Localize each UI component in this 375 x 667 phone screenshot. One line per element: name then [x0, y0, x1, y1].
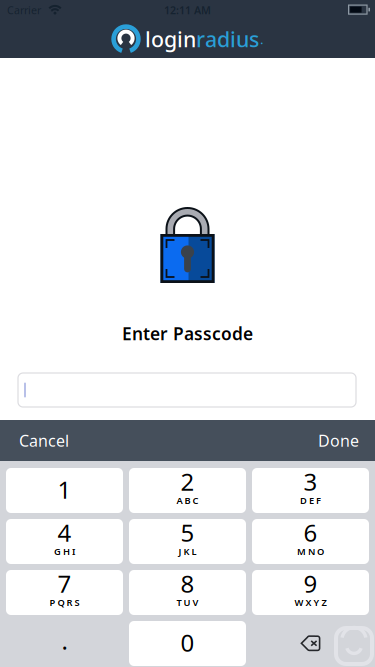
- staticText: 5: [180, 517, 194, 548]
- staticText: 1: [57, 474, 71, 505]
- staticText: 12:11 AM: [164, 3, 211, 17]
- staticText: A B C: [176, 494, 198, 507]
- button[interactable]: 2: [129, 468, 246, 513]
- staticText: Done: [318, 430, 359, 451]
- button[interactable]: Cancel: [0, 420, 88, 461]
- button[interactable]: .: [6, 621, 123, 666]
- button[interactable]: 4: [6, 519, 123, 564]
- staticText: 6: [303, 517, 317, 548]
- staticText: D E F: [300, 494, 321, 507]
- staticText: M N O: [297, 545, 324, 558]
- staticText: W X Y Z: [294, 596, 326, 609]
- button[interactable]: 7: [6, 570, 123, 615]
- staticText: 7: [57, 568, 71, 599]
- button[interactable]: 8: [129, 570, 246, 615]
- staticText: 8: [180, 568, 194, 599]
- button[interactable]: Delete: [252, 621, 369, 666]
- button[interactable]: 1: [6, 468, 123, 513]
- staticText: Carrier: [7, 3, 41, 17]
- staticText: 3: [303, 466, 317, 497]
- button[interactable]: 6: [252, 519, 369, 564]
- staticText: Enter Passcode: [122, 322, 253, 345]
- staticText: 9: [303, 568, 317, 599]
- staticText: P Q R S: [49, 596, 79, 609]
- staticText: G H I: [54, 545, 75, 558]
- staticText: J K L: [178, 545, 196, 558]
- staticText: .: [61, 625, 67, 656]
- staticText: radius: [196, 25, 259, 53]
- staticText: 4: [57, 517, 71, 548]
- staticText: Cancel: [19, 430, 69, 451]
- button[interactable]: 9: [252, 570, 369, 615]
- staticText: 0: [180, 627, 194, 658]
- staticText: T U V: [176, 596, 198, 609]
- button[interactable]: 3: [252, 468, 369, 513]
- button[interactable]: 0: [129, 621, 246, 666]
- staticText: .: [260, 30, 264, 48]
- button[interactable]: Done: [300, 420, 375, 461]
- button[interactable]: 5: [129, 519, 246, 564]
- staticText: login: [145, 25, 196, 53]
- staticText: 2: [180, 466, 194, 497]
